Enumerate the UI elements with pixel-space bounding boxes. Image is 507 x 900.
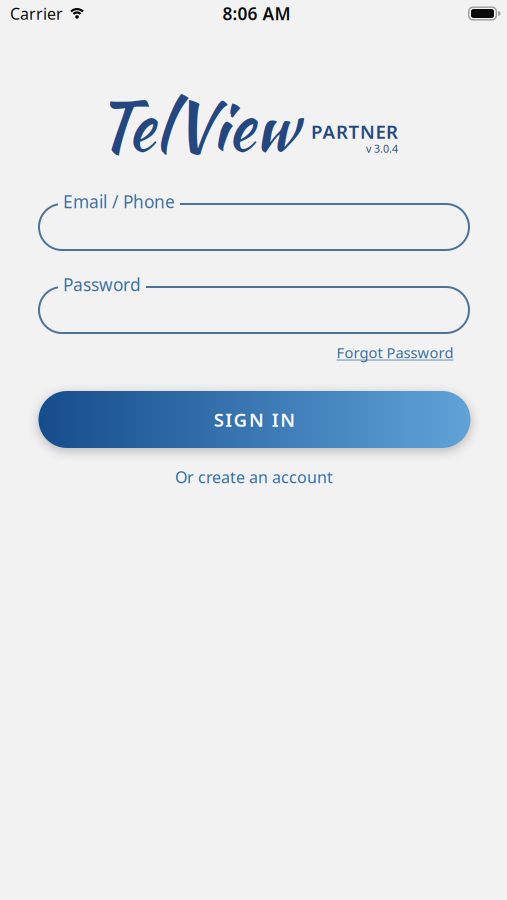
button[interactable]: S [38, 391, 470, 448]
button[interactable]: Email / Phone [38, 190, 470, 251]
staticText: N [280, 407, 295, 432]
staticText: N [249, 407, 264, 432]
staticText: Carrier [10, 3, 63, 24]
staticText: R [336, 119, 348, 144]
staticText: R [386, 119, 398, 144]
staticText: TelView [95, 78, 296, 174]
staticText: G [234, 407, 248, 432]
staticText: v 3.0.4 [366, 141, 398, 156]
staticText: 8:06 AM [222, 2, 290, 25]
staticText: Password [63, 273, 141, 296]
staticText: T [348, 119, 359, 144]
staticText: Or create an account [175, 466, 333, 488]
button[interactable]: Or create an account [134, 467, 374, 487]
staticText: Forgot Password [336, 343, 453, 362]
button[interactable]: Forgot Password [315, 342, 475, 362]
staticText: I [272, 407, 279, 432]
staticText: P [311, 119, 322, 144]
staticText: Email / Phone [63, 190, 175, 213]
staticText: E [375, 119, 385, 144]
button[interactable]: Password [38, 273, 470, 334]
staticText: A [322, 119, 335, 144]
staticText: N [360, 119, 375, 144]
staticText: I [225, 407, 232, 432]
staticText: S [214, 407, 224, 432]
